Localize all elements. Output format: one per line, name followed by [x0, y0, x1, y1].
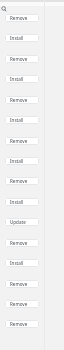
button[interactable]: Update [5, 218, 39, 226]
staticText: Install [10, 35, 24, 41]
button[interactable]: Install [5, 34, 39, 42]
button[interactable]: Remove [5, 55, 39, 63]
staticText: Remove [10, 138, 28, 144]
button[interactable]: Install [5, 259, 39, 267]
button[interactable]: Remove [5, 137, 39, 145]
button[interactable]: Remove [5, 239, 39, 247]
staticText: Remove [10, 240, 28, 246]
staticText: Remove [10, 281, 28, 287]
staticText: Install [10, 199, 24, 205]
staticText: Remove [10, 15, 28, 21]
staticText: Update [10, 219, 26, 225]
button[interactable]: Remove [5, 320, 39, 328]
staticText: Install [10, 117, 24, 123]
staticText: Remove [10, 321, 28, 327]
staticText: Remove [10, 97, 28, 103]
button[interactable]: Install [5, 75, 39, 83]
button[interactable]: Remove [5, 14, 39, 22]
button[interactable]: Install [5, 116, 39, 124]
button[interactable]: Remove [5, 300, 39, 308]
button[interactable]: Search [1, 6, 7, 12]
button[interactable]: Remove [5, 280, 39, 288]
staticText: Remove [10, 178, 28, 184]
button[interactable]: Remove [5, 177, 39, 185]
button[interactable]: Install [5, 198, 39, 206]
staticText: Install [10, 260, 24, 266]
staticText: Install [10, 76, 24, 82]
button[interactable]: Remove [5, 96, 39, 104]
staticText: Install [10, 158, 24, 164]
staticText: Remove [10, 56, 28, 62]
button[interactable]: Install [5, 157, 39, 165]
staticText: Remove [10, 301, 28, 307]
